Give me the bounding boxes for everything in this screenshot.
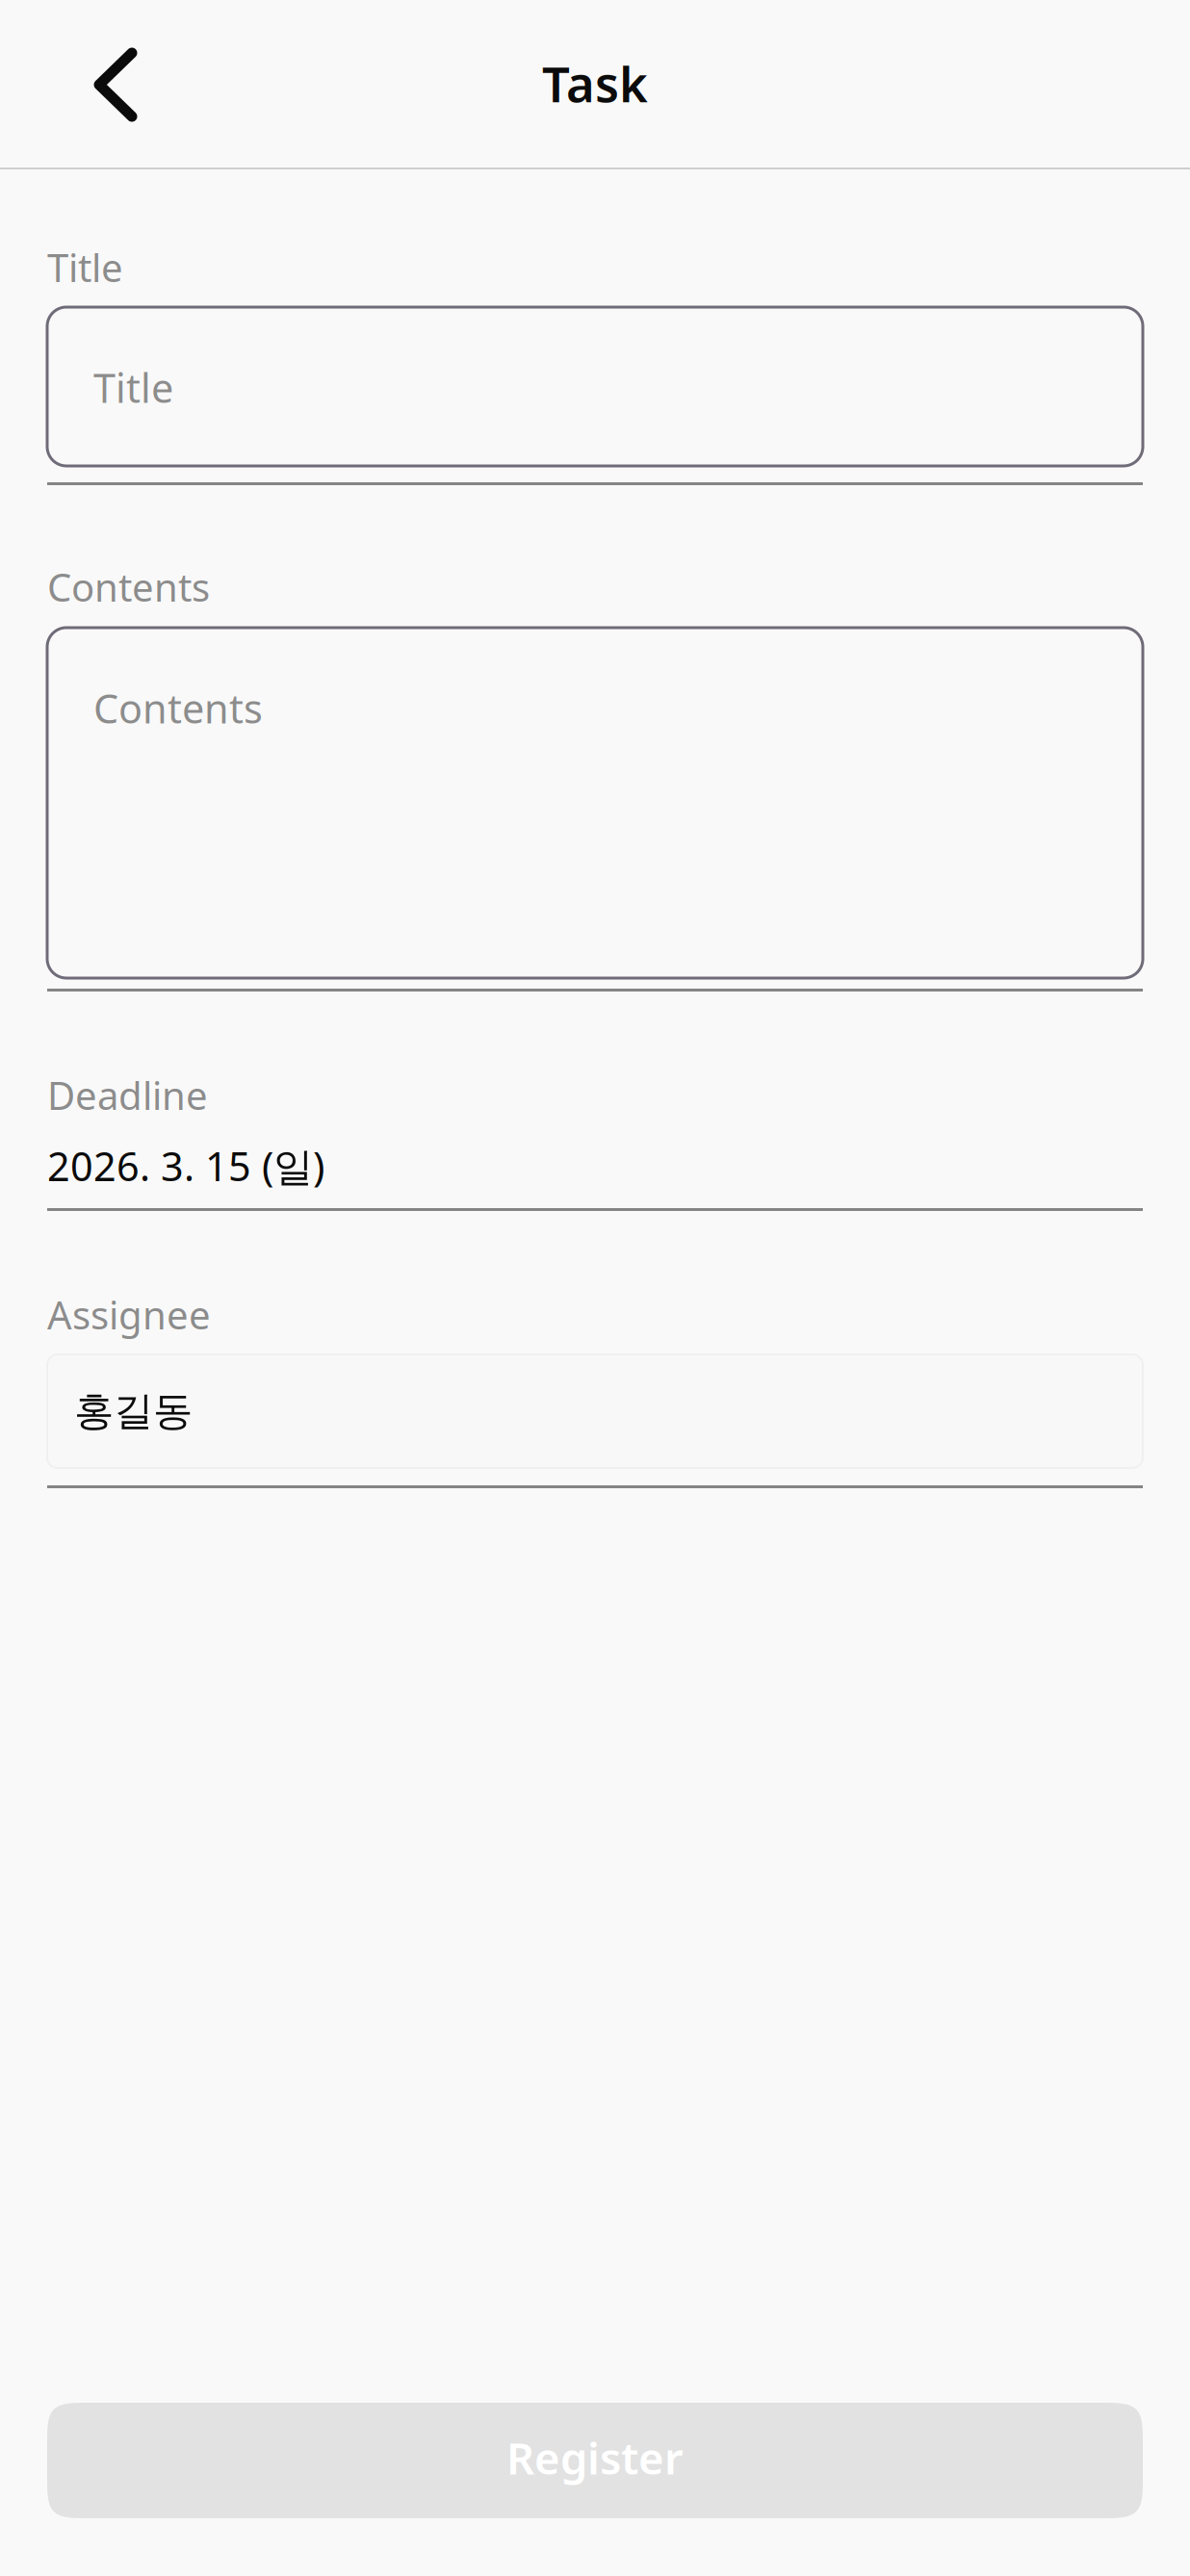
button[interactable]: 홍길동 bbox=[47, 1354, 1143, 1468]
staticText: Title bbox=[93, 361, 173, 414]
staticText: 2026. 3. 15 (일) bbox=[47, 1139, 324, 1192]
staticText: 홍길동 bbox=[74, 1387, 193, 1436]
staticText: Contents bbox=[47, 561, 210, 612]
staticText: Contents bbox=[93, 682, 263, 734]
button[interactable]: Contents bbox=[47, 628, 1143, 978]
staticText: Deadline bbox=[47, 1069, 208, 1121]
button[interactable]: 2026. 3. 15 (일) bbox=[47, 1140, 1143, 1192]
button[interactable]: Register bbox=[47, 2403, 1143, 2518]
button[interactable]: Back bbox=[27, 13, 171, 157]
staticText: Task bbox=[542, 51, 648, 116]
staticText: Assignee bbox=[47, 1289, 211, 1340]
button[interactable]: Title bbox=[47, 307, 1143, 466]
staticText: Register bbox=[506, 2429, 684, 2487]
staticText: Title bbox=[47, 242, 123, 293]
